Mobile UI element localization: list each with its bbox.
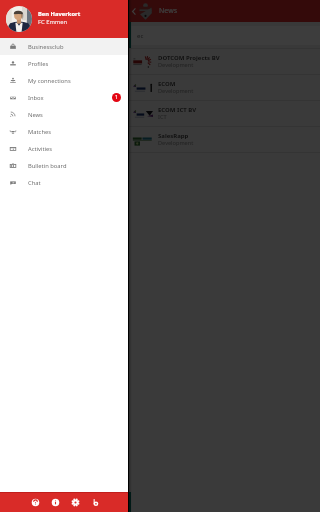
button[interactable]: ECOM ICT BV [128, 101, 320, 126]
button[interactable]: Help [28, 495, 43, 510]
staticText: News [159, 6, 177, 16]
button[interactable]: Back [129, 6, 139, 16]
button[interactable]: SalesRapp [128, 127, 320, 152]
staticText: ECOM [158, 80, 176, 88]
staticText: ec [137, 32, 144, 40]
staticText: Ben Haverkort [38, 10, 81, 18]
button[interactable]: Information [48, 495, 63, 510]
staticText: Bulletin board [28, 162, 67, 170]
button[interactable]: Matches [0, 123, 128, 140]
button[interactable]: My connections [0, 72, 128, 89]
staticText: Development [158, 87, 194, 95]
button[interactable]: Businessclub [0, 38, 128, 55]
staticText: SalesRapp [158, 132, 189, 140]
staticText: ICT [158, 113, 167, 121]
button[interactable]: Businessclub [88, 495, 103, 510]
button[interactable]: Chat [0, 174, 128, 191]
staticText: Development [158, 61, 194, 69]
button[interactable]: Activities [0, 140, 128, 157]
staticText: Businessclub [28, 43, 64, 51]
staticText: Activities [28, 145, 53, 153]
button[interactable]: DOTCOM Projects BV [128, 49, 320, 74]
staticText: 1 [115, 94, 118, 101]
button[interactable]: Inbox [0, 89, 128, 106]
button[interactable]: Profiles [0, 55, 128, 72]
staticText: FC Emmen [38, 18, 68, 26]
button[interactable]: News [0, 106, 128, 123]
staticText: DOTCOM Projects BV [158, 54, 220, 62]
staticText: News [28, 111, 43, 119]
staticText: My connections [28, 77, 71, 85]
button[interactable]: ECOM [128, 75, 320, 100]
staticText: ECOM ICT BV [158, 106, 197, 114]
staticText: Development [158, 139, 194, 147]
button[interactable]: Bulletin board [0, 157, 128, 174]
staticText: Chat [28, 179, 41, 187]
staticText: Matches [28, 128, 52, 136]
staticText: Inbox [28, 94, 44, 102]
staticText: Profiles [28, 60, 49, 68]
button[interactable]: Settings [68, 495, 83, 510]
